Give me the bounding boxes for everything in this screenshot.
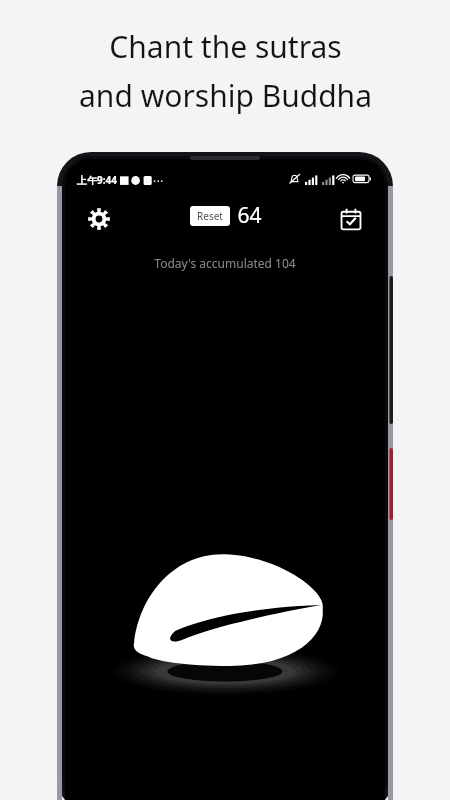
- button[interactable]: Wooden fish, tap to chant: [110, 539, 340, 719]
- button[interactable]: Reset: [190, 206, 230, 226]
- button[interactable]: Settings: [81, 201, 117, 237]
- staticText: and worship Buddha: [79, 75, 372, 116]
- staticText: Today's accumulated 104: [154, 255, 296, 271]
- staticText: 上午9:44: [77, 173, 117, 187]
- staticText: Chant the sutras: [109, 26, 342, 67]
- staticText: 64: [237, 201, 262, 230]
- staticText: Reset: [197, 209, 223, 223]
- button[interactable]: Calendar records: [333, 201, 369, 237]
